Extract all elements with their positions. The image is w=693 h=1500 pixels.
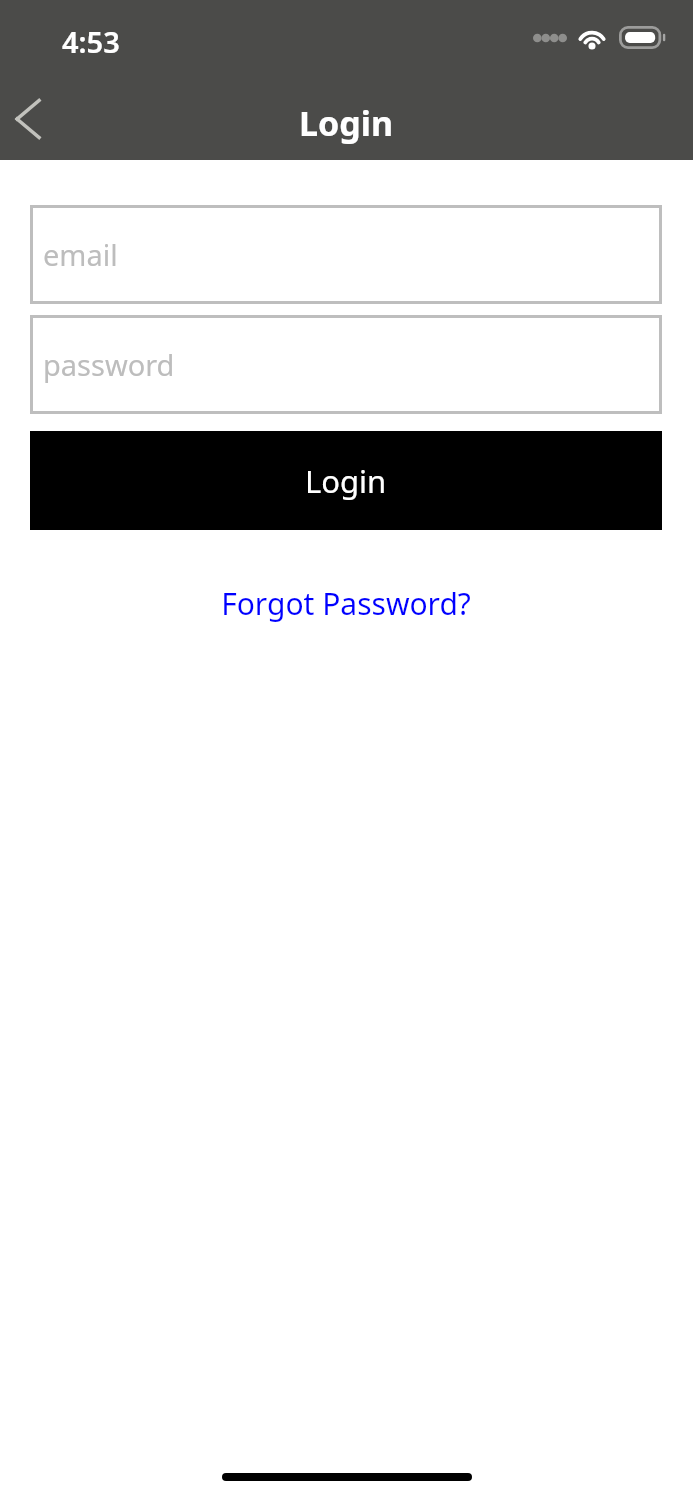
button[interactable]: Back: [2, 90, 60, 148]
button[interactable]: Forgot Password?: [30, 583, 662, 624]
button[interactable]: Login: [30, 431, 662, 530]
staticText: Login: [299, 100, 394, 146]
staticText: 4:53: [62, 22, 120, 61]
button[interactable]: password: [30, 315, 662, 414]
staticText: Forgot Password?: [221, 583, 471, 624]
button[interactable]: email: [30, 205, 662, 304]
staticText: password: [43, 345, 175, 384]
staticText: email: [43, 235, 118, 274]
staticText: Login: [305, 460, 387, 502]
